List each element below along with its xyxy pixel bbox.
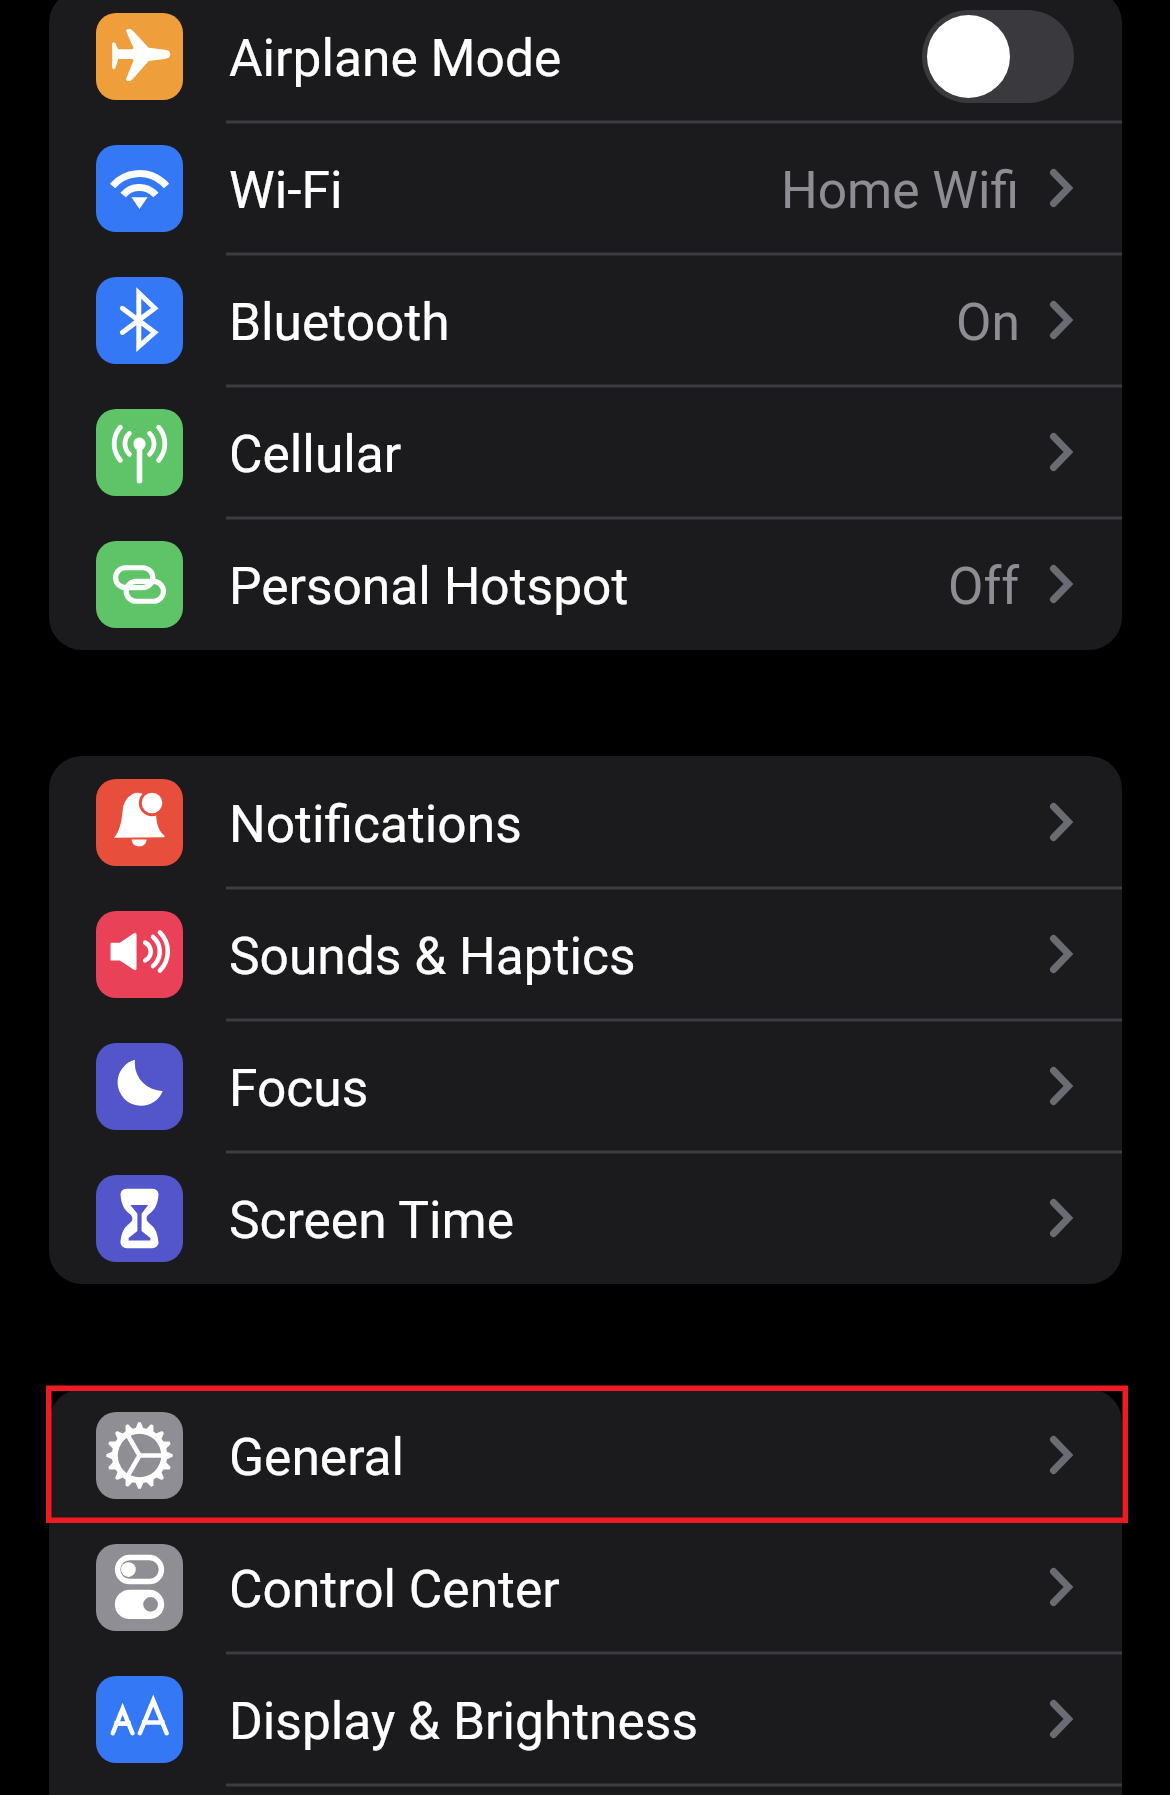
button[interactable]: Sounds & Haptics [49, 888, 1122, 1020]
staticText: Focus [229, 1058, 369, 1118]
staticText: Screen Time [229, 1190, 515, 1250]
button[interactable]: Accessibility [49, 1785, 1122, 1795]
staticText: Sounds & Haptics [229, 926, 636, 986]
button[interactable]: Airplane Mode toggle, off [922, 10, 1074, 103]
button[interactable]: Notifications [49, 756, 1122, 888]
button[interactable]: Screen Time [49, 1152, 1122, 1284]
button[interactable]: Cellular [49, 386, 1122, 518]
button[interactable]: Airplane Mode [49, 0, 1122, 122]
staticText: Cellular [229, 424, 402, 484]
staticText: Display & Brightness [229, 1691, 699, 1751]
staticText: Home Wifi [781, 160, 1020, 220]
button[interactable]: Control Center [49, 1521, 1122, 1653]
staticText: Airplane Mode [229, 28, 562, 88]
button[interactable]: Display & Brightness [49, 1653, 1122, 1785]
staticText: Notifications [229, 794, 522, 854]
staticText: Bluetooth [229, 292, 450, 352]
button[interactable]: Focus [49, 1020, 1122, 1152]
staticText: Personal Hotspot [229, 556, 629, 616]
staticText: Control Center [229, 1559, 560, 1619]
button[interactable]: Wi-Fi [49, 122, 1122, 254]
staticText: Off [948, 556, 1020, 616]
button[interactable]: General [49, 1389, 1122, 1521]
staticText: General [229, 1427, 405, 1487]
staticText: On [956, 292, 1020, 352]
button[interactable]: Bluetooth [49, 254, 1122, 386]
button[interactable]: Personal Hotspot [49, 518, 1122, 650]
staticText: Wi-Fi [229, 160, 343, 220]
